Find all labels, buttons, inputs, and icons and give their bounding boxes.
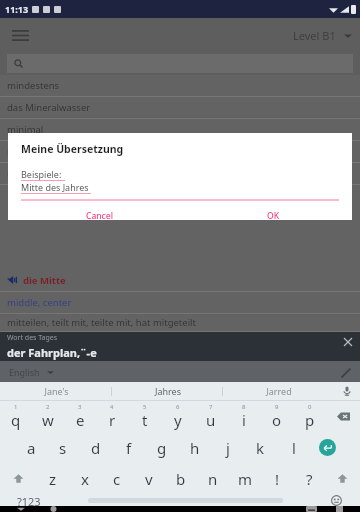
other: Play pronunciation <box>7 275 17 285</box>
button[interactable]: 0 <box>293 401 326 432</box>
button[interactable]: 3 <box>64 401 96 432</box>
button[interactable]: middle, center <box>0 292 360 314</box>
button[interactable]: ! <box>261 463 293 494</box>
staticText: ! <box>275 469 280 489</box>
staticText: Meine Übersetzung <box>21 142 124 156</box>
button[interactable]: miss- <box>0 163 360 185</box>
staticText: d <box>91 438 101 458</box>
button[interactable]: s <box>47 432 79 463</box>
staticText: 4 <box>110 403 114 411</box>
button[interactable]: Space <box>88 494 283 506</box>
staticText: 0 <box>308 403 312 411</box>
button[interactable]: Switch keyboard <box>302 506 320 512</box>
staticText: Wort des Tages <box>7 333 58 343</box>
staticText: Beispiele: <box>21 168 62 180</box>
staticText: 11:13 <box>5 3 29 15</box>
staticText: g <box>157 438 167 458</box>
button[interactable]: Play pronunciation <box>0 269 360 292</box>
staticText: Mitte des Jahres <box>21 181 89 193</box>
staticText: das Mineralwasser <box>7 101 91 114</box>
button[interactable]: das Mineralwasser <box>0 97 360 119</box>
button[interactable]: Jane's <box>0 382 112 400</box>
staticText: 5 <box>143 403 147 411</box>
button[interactable]: Shift <box>325 463 360 494</box>
staticText: b <box>176 469 186 489</box>
staticText: h <box>190 438 200 458</box>
button[interactable]: Delete <box>326 401 360 432</box>
button[interactable]: d <box>79 432 112 463</box>
staticText: q <box>11 410 21 430</box>
staticText: p <box>305 410 315 430</box>
button[interactable]: l <box>277 432 310 463</box>
button[interactable]: ? <box>293 463 325 494</box>
staticText: Cancel <box>86 210 113 220</box>
button[interactable]: Jarred <box>223 382 334 400</box>
button[interactable]: b <box>165 463 197 494</box>
button[interactable]: minimal <box>0 119 360 141</box>
button[interactable]: 7 <box>194 401 227 432</box>
button[interactable]: ?123 <box>0 494 58 506</box>
button[interactable]: English <box>9 366 54 378</box>
button[interactable]: Voice input <box>334 382 360 400</box>
button[interactable]: 1 <box>0 401 32 432</box>
button[interactable]: Home <box>44 506 62 512</box>
button[interactable]: j <box>211 432 244 463</box>
button[interactable]: k <box>244 432 277 463</box>
button[interactable]: 5 <box>128 401 161 432</box>
button[interactable]: Wort des Tages <box>0 332 360 361</box>
staticText: s <box>59 438 67 458</box>
button[interactable]: c <box>101 463 133 494</box>
button[interactable]: 4 <box>96 401 128 432</box>
button[interactable]: Edit <box>338 364 354 380</box>
staticText: mitteilen, teilt mit, teilte mit, hat mi… <box>7 316 196 329</box>
button[interactable]: g <box>145 432 178 463</box>
staticText: 1 <box>14 403 18 411</box>
button[interactable]: mitteilen, teilt mit, teilte mit, hat mi… <box>0 314 360 332</box>
staticText: l <box>292 438 296 458</box>
button[interactable]: Open navigation menu <box>6 21 34 49</box>
staticText: ? <box>306 469 313 489</box>
button[interactable]: Close word of the day <box>341 335 355 349</box>
button[interactable]: Back <box>12 506 30 512</box>
button[interactable]: Emoji <box>313 494 360 506</box>
button[interactable]: mindestens <box>0 75 360 97</box>
button[interactable]: f <box>112 432 145 463</box>
button[interactable]: Level B1 <box>293 28 352 43</box>
staticText: mindestens <box>7 79 60 92</box>
staticText: z <box>49 469 57 489</box>
button[interactable]: m <box>229 463 261 494</box>
staticText: w <box>42 410 54 430</box>
button[interactable]: n <box>197 463 229 494</box>
staticText: die Mitte <box>23 274 66 287</box>
staticText: Level B1 <box>293 28 336 43</box>
button[interactable]: 9 <box>260 401 293 432</box>
button[interactable]: OK <box>267 210 280 220</box>
staticText: 3 <box>78 403 82 411</box>
button[interactable]: Shift <box>0 463 36 494</box>
staticText: miss- <box>7 167 31 180</box>
staticText: m <box>238 469 253 489</box>
button[interactable]: mischen, mischt, mischte, hat gemischt <box>0 141 360 163</box>
button[interactable]: v <box>133 463 165 494</box>
staticText: Jane's <box>44 385 69 397</box>
button[interactable]: Recents <box>330 506 348 512</box>
staticText: OK <box>267 210 280 220</box>
button[interactable]: Cancel <box>86 210 113 220</box>
button[interactable]: 6 <box>161 401 194 432</box>
staticText: j <box>226 438 230 458</box>
button[interactable]: z <box>36 463 69 494</box>
button[interactable]: 8 <box>227 401 260 432</box>
button[interactable]: x <box>69 463 101 494</box>
button[interactable]: 2 <box>32 401 64 432</box>
staticText: mischen, mischt, mischte, hat gemischt <box>7 145 183 158</box>
button[interactable]: a <box>15 432 47 463</box>
button[interactable]: Jahres <box>112 382 223 400</box>
staticText: minimal <box>7 123 44 136</box>
staticText: English <box>9 366 40 378</box>
button[interactable]: Enter <box>310 432 344 463</box>
button[interactable]: h <box>178 432 211 463</box>
